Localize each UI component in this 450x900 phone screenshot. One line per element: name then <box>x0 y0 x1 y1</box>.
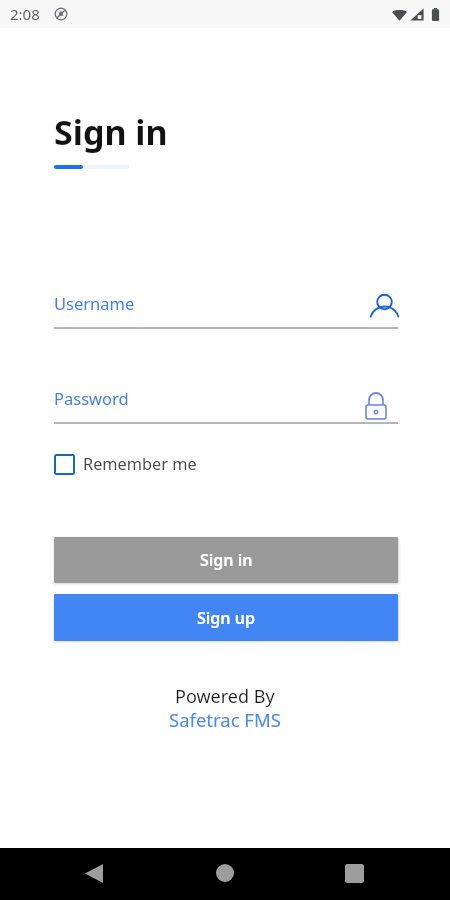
button[interactable]: Sign up <box>54 594 398 641</box>
staticText: Powered By <box>175 684 275 709</box>
button[interactable]: Remember me <box>54 453 197 475</box>
button[interactable]: Home <box>201 849 249 897</box>
button[interactable]: Password <box>54 386 398 424</box>
button[interactable]: Back <box>70 849 118 897</box>
other: Password <box>365 389 398 421</box>
staticText: Password <box>54 387 129 409</box>
staticText: Sign in <box>54 109 168 155</box>
staticText: Username <box>54 292 135 314</box>
staticText: 2:08 <box>10 4 40 24</box>
other: User <box>368 294 398 324</box>
staticText: Sign in <box>200 549 253 571</box>
button[interactable]: Sign in <box>54 537 398 583</box>
button[interactable]: Username <box>54 291 398 329</box>
staticText: Sign up <box>197 607 255 629</box>
button[interactable]: Safetrac FMS <box>169 707 281 732</box>
staticText: Remember me <box>83 453 197 475</box>
button[interactable]: Recents <box>330 849 378 897</box>
